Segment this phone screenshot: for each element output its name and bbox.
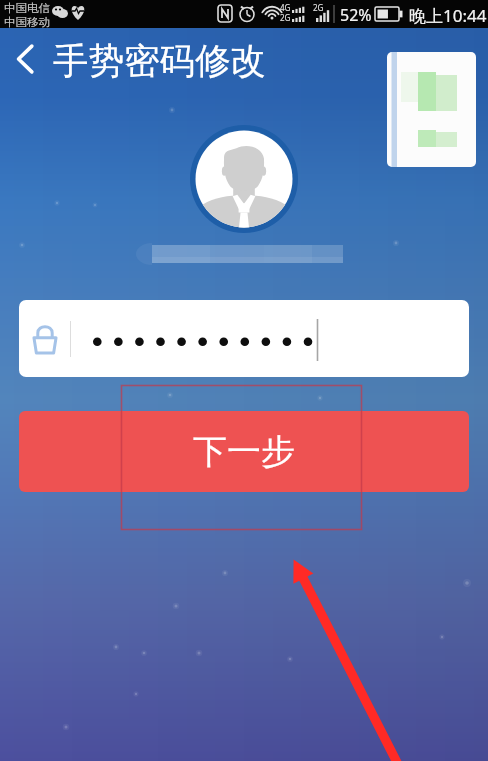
staticText: 下一步 <box>193 430 295 473</box>
button[interactable]: Back <box>0 28 50 90</box>
staticText: 手势密码修改 <box>53 39 266 84</box>
staticText: 4G <box>280 2 291 13</box>
staticText: 晚上10:44 <box>409 4 487 27</box>
staticText: 中国移动 <box>4 15 50 29</box>
staticText: 2G <box>313 2 324 13</box>
button[interactable]: 下一步 <box>19 411 469 492</box>
staticText: 中国电信 <box>4 1 50 15</box>
button[interactable] <box>19 300 469 377</box>
staticText: 2G <box>280 12 291 23</box>
staticText: 52% <box>340 4 372 26</box>
